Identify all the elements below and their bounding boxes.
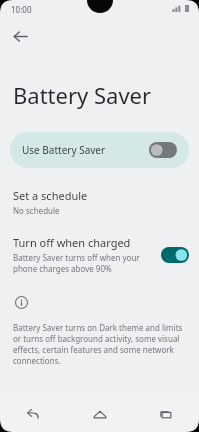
staticText: Use Battery Saver bbox=[22, 143, 149, 157]
staticText: Battery Saver turns off when your phone … bbox=[13, 252, 155, 274]
staticText: No schedule bbox=[13, 205, 60, 216]
button[interactable]: Back bbox=[16, 398, 50, 432]
button[interactable]: Use Battery Saver bbox=[10, 132, 189, 168]
button[interactable]: Off bbox=[149, 142, 177, 158]
button[interactable]: Recent apps bbox=[149, 398, 183, 432]
button[interactable]: Set a schedule bbox=[0, 186, 199, 218]
staticText: Battery Saver bbox=[13, 80, 152, 110]
staticText: Battery Saver turns on Dark theme and li… bbox=[13, 322, 188, 366]
staticText: 10:00 bbox=[11, 4, 32, 15]
button[interactable]: Turn off when charged bbox=[0, 235, 199, 274]
staticText: Set a schedule bbox=[13, 188, 88, 203]
button[interactable]: Home bbox=[83, 398, 117, 432]
button[interactable]: Back bbox=[4, 20, 36, 52]
button[interactable]: On bbox=[161, 247, 189, 263]
staticText: Turn off when charged bbox=[13, 235, 131, 250]
